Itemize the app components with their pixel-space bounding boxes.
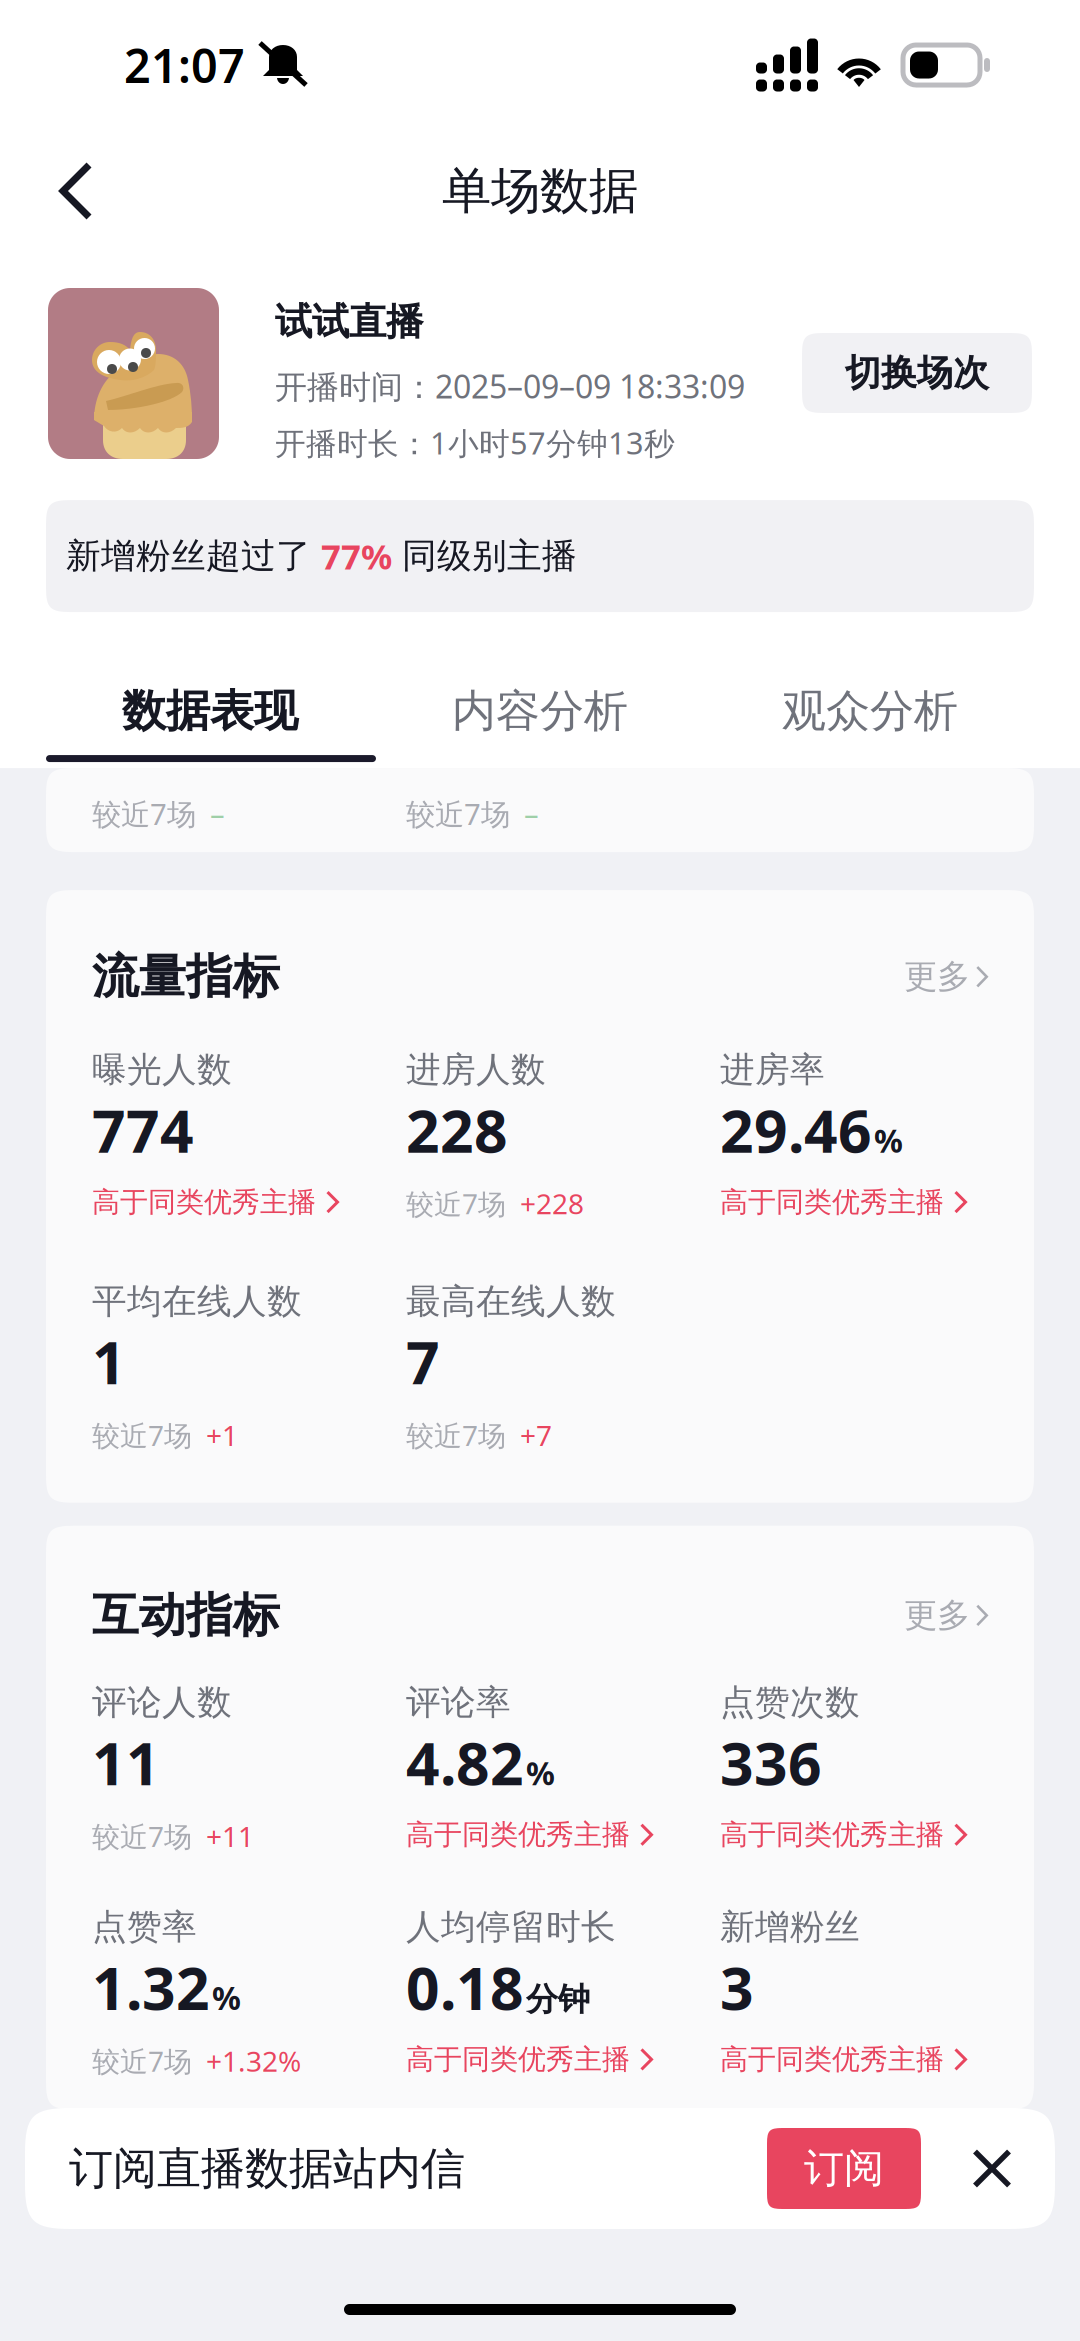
staticText: +1.32% [206, 2042, 301, 2079]
staticText: 单场数据 [442, 161, 638, 221]
staticText: 0.18 [406, 1948, 524, 2026]
staticText: 平均在线人数 [92, 1280, 302, 1323]
button[interactable]: 高于同类优秀主播 [720, 2042, 967, 2077]
staticText: 774 [92, 1091, 194, 1169]
staticText: 点赞次数 [720, 1681, 860, 1724]
staticText: 评论率 [406, 1681, 511, 1724]
staticText: 3 [720, 1948, 754, 2026]
staticText: 新增粉丝超过了 [66, 535, 321, 577]
staticText: 内容分析 [452, 684, 628, 738]
staticText: 29.46 [720, 1091, 872, 1169]
button[interactable]: 观众分析 [705, 667, 1035, 755]
staticText: 新增粉丝 [720, 1906, 860, 1948]
staticText: 高于同类优秀主播 [406, 2042, 630, 2077]
staticText: 人均停留时长 [406, 1906, 616, 1948]
staticText: +11 [206, 1817, 254, 1855]
staticText: – [210, 794, 225, 833]
staticText: – [524, 794, 539, 833]
button[interactable]: 关闭 [955, 2131, 1029, 2205]
staticText: 试试直播 [275, 299, 423, 345]
staticText: 较近7场 [406, 794, 510, 833]
button[interactable]: 数据表现 [45, 667, 375, 755]
staticText: 4.82 [406, 1724, 524, 1801]
staticText: 分钟 [526, 1980, 590, 2019]
staticText: 1 [92, 1323, 126, 1400]
staticText: 较近7场 [92, 794, 196, 833]
staticText: 数据表现 [122, 684, 298, 738]
staticText: 较近7场 [406, 1185, 506, 1222]
staticText: 较近7场 [92, 1817, 192, 1855]
staticText: 高于同类优秀主播 [406, 1817, 630, 1852]
button[interactable]: 切换场次 [802, 333, 1032, 413]
button[interactable]: 更多 [904, 1589, 988, 1642]
staticText: 开播时间：2025–09–09 18:33:09 [275, 365, 745, 407]
staticText: 高于同类优秀主播 [92, 1185, 316, 1219]
staticText: 进房人数 [406, 1048, 546, 1091]
staticText: % [212, 1976, 241, 2019]
staticText: 评论人数 [92, 1681, 232, 1724]
staticText: 同级别主播 [392, 535, 577, 577]
staticText: 流量指标 [92, 948, 280, 1005]
button[interactable]: 高于同类优秀主播 [406, 1817, 653, 1852]
staticText: 切换场次 [845, 351, 989, 395]
staticText: 开播时长：1小时57分钟13秒 [275, 422, 675, 463]
staticText: 较近7场 [92, 2042, 192, 2079]
staticText: +7 [520, 1417, 552, 1454]
button[interactable]: 返回 [0, 141, 129, 241]
staticText: % [874, 1119, 903, 1161]
staticText: 更多 [904, 956, 970, 997]
staticText: 较近7场 [92, 1417, 192, 1454]
button[interactable]: 订阅 [767, 2128, 921, 2209]
staticText: 点赞率 [92, 1906, 197, 1948]
staticText: 1.32 [92, 1948, 210, 2026]
staticText: 11 [92, 1724, 160, 1801]
staticText: 高于同类优秀主播 [720, 1185, 944, 1219]
staticText: 高于同类优秀主播 [720, 2042, 944, 2077]
button[interactable]: 高于同类优秀主播 [92, 1185, 339, 1219]
staticText: 228 [406, 1091, 508, 1169]
staticText: 订阅直播数据站内信 [69, 2141, 465, 2195]
staticText: 最高在线人数 [406, 1280, 616, 1323]
staticText: % [526, 1752, 555, 1794]
staticText: 曝光人数 [92, 1048, 232, 1091]
staticText: +1 [206, 1417, 238, 1454]
staticText: 较近7场 [406, 1417, 506, 1454]
staticText: 高于同类优秀主播 [720, 1817, 944, 1852]
staticText: +228 [520, 1185, 584, 1222]
staticText: 77% [321, 533, 392, 579]
button[interactable]: 高于同类优秀主播 [720, 1817, 967, 1852]
staticText: 订阅 [804, 2144, 884, 2193]
button[interactable]: 高于同类优秀主播 [720, 1185, 967, 1219]
button[interactable]: 更多 [904, 950, 988, 1003]
button[interactable]: 高于同类优秀主播 [406, 2042, 653, 2077]
staticText: 观众分析 [782, 684, 958, 738]
staticText: 更多 [904, 1595, 970, 1636]
staticText: 互动指标 [92, 1587, 280, 1644]
staticText: 336 [720, 1724, 822, 1801]
staticText: 21:07 [124, 34, 245, 96]
staticText: 进房率 [720, 1048, 825, 1091]
staticText: 7 [406, 1323, 440, 1400]
button[interactable]: 内容分析 [375, 667, 705, 755]
